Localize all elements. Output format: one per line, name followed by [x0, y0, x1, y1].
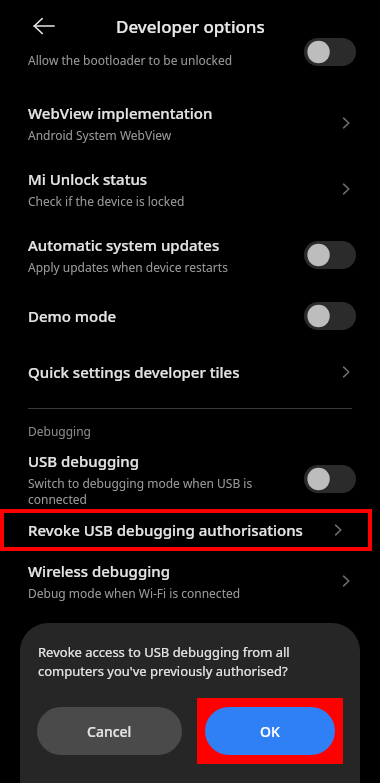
staticText: Quick settings developer tiles [28, 362, 240, 382]
staticText: Demo mode [28, 306, 117, 326]
button[interactable]: Automatic system updates [0, 222, 380, 288]
button[interactable]: Cancel [37, 707, 182, 755]
button[interactable]: OK [205, 707, 335, 755]
button[interactable]: Quick settings developer tiles [0, 344, 380, 400]
button[interactable]: Wireless debugging [0, 551, 380, 611]
staticText: OK [260, 722, 280, 741]
staticText: Check if the device is locked [28, 193, 185, 209]
staticText: Switch to debugging mode when USB is con… [28, 475, 296, 507]
staticText: USB debugging [28, 451, 140, 471]
button[interactable]: WebView implementation [0, 90, 380, 156]
staticText: Android System WebView [28, 127, 172, 143]
button[interactable]: USB debugging [0, 449, 380, 509]
button[interactable]: Demo mode [0, 288, 380, 344]
staticText: Cancel [87, 722, 132, 741]
staticText: Automatic system updates [28, 235, 220, 255]
staticText: Debug mode when Wi-Fi is connected [28, 585, 241, 601]
staticText: Revoke access to USB debugging from all … [38, 643, 342, 680]
staticText: Apply updates when device restarts [28, 259, 228, 275]
staticText: Allow the bootloader to be unlocked [28, 52, 233, 68]
button[interactable]: Allow the bootloader to be unlocked [0, 52, 380, 82]
staticText: Mi Unlock status [28, 169, 148, 189]
button[interactable]: Revoke USB debugging authorisations [4, 513, 368, 547]
staticText: Debugging [28, 423, 91, 439]
staticText: Developer options [116, 15, 265, 38]
staticText: WebView implementation [28, 103, 213, 123]
staticText: Revoke USB debugging authorisations [28, 520, 328, 540]
button[interactable]: Mi Unlock status [0, 156, 380, 222]
button[interactable]: Back [24, 6, 64, 46]
staticText: Wireless debugging [28, 561, 170, 581]
